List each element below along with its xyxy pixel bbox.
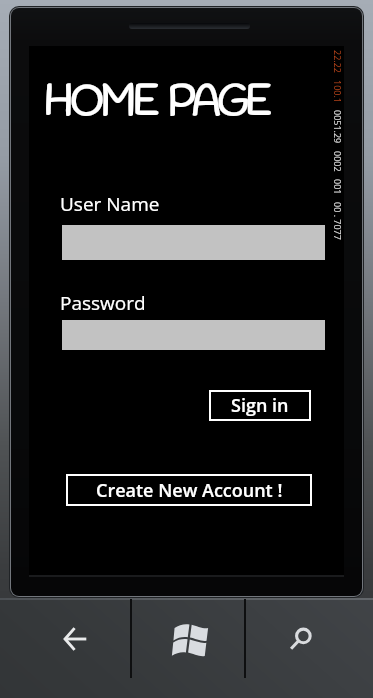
button[interactable]: Start [131,598,245,698]
button[interactable]: Search [245,598,373,698]
button[interactable]: Back [0,598,131,698]
staticText: User Name [60,191,160,217]
button[interactable]: Create New Account ! [66,474,312,506]
button[interactable]: Sign in [209,390,311,421]
staticText: Sign in [231,393,289,418]
staticText: HOME PAGE [43,77,268,132]
staticText: Create New Account ! [96,478,283,503]
staticText: Password [60,290,146,316]
